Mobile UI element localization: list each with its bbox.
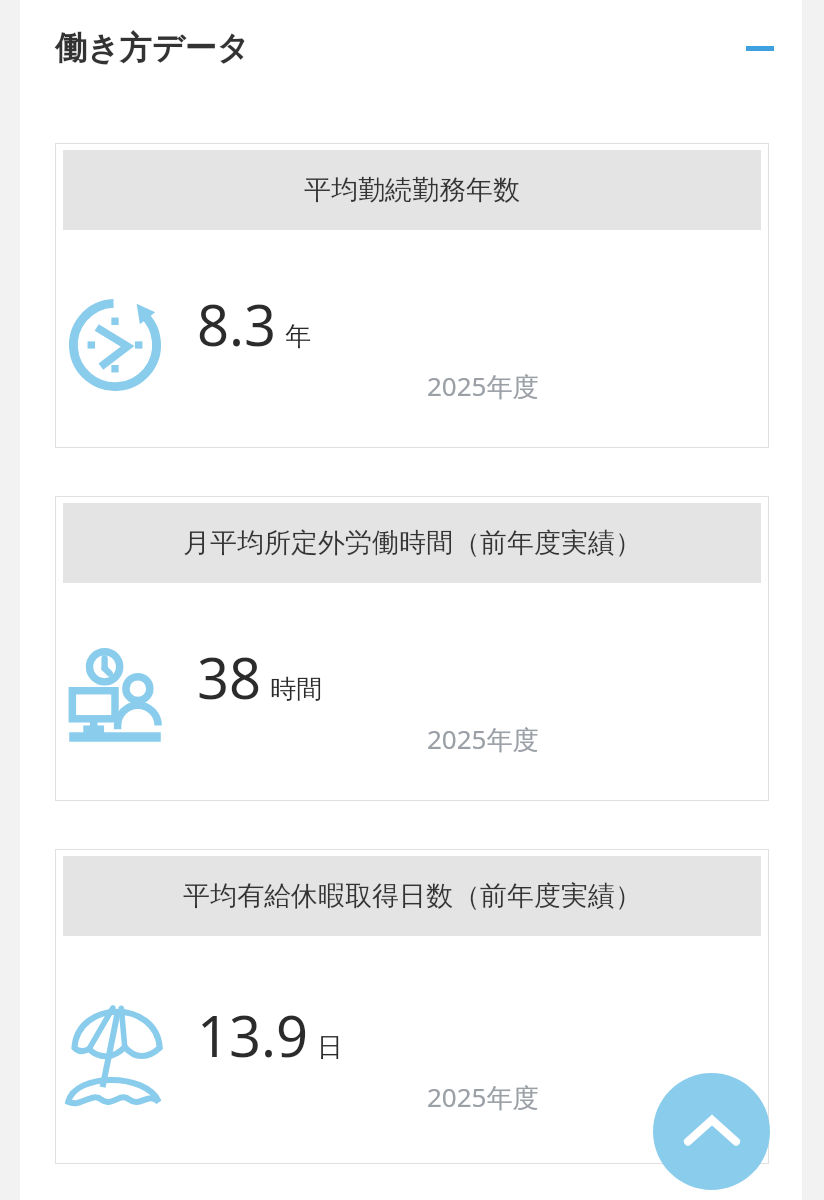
- button[interactable]: 平均有給休暇取得日数（前年度実績）: [55, 849, 769, 1164]
- staticText: 働き方データ: [55, 28, 250, 68]
- staticText: 2025年度: [427, 1079, 539, 1115]
- staticText: 2025年度: [427, 721, 539, 757]
- staticText: 時間: [270, 673, 322, 706]
- staticText: 8.3: [197, 286, 277, 362]
- staticText: 平均勤続勤務年数: [304, 173, 520, 207]
- staticText: 年: [285, 320, 311, 353]
- staticText: 月平均所定外労働時間（前年度実績）: [183, 526, 642, 560]
- button[interactable]: 平均勤続勤務年数: [55, 143, 769, 448]
- button[interactable]: 働き方データ: [20, 0, 802, 95]
- button[interactable]: 月平均所定外労働時間（前年度実績）: [55, 496, 769, 801]
- staticText: 2025年度: [427, 368, 539, 404]
- staticText: 38: [197, 639, 262, 715]
- staticText: 日: [317, 1031, 343, 1064]
- button[interactable]: ページトップへ戻る: [653, 1073, 770, 1190]
- staticText: 平均有給休暇取得日数（前年度実績）: [183, 879, 642, 913]
- other: 折りたたむ: [732, 20, 788, 76]
- staticText: 13.9: [197, 997, 309, 1073]
